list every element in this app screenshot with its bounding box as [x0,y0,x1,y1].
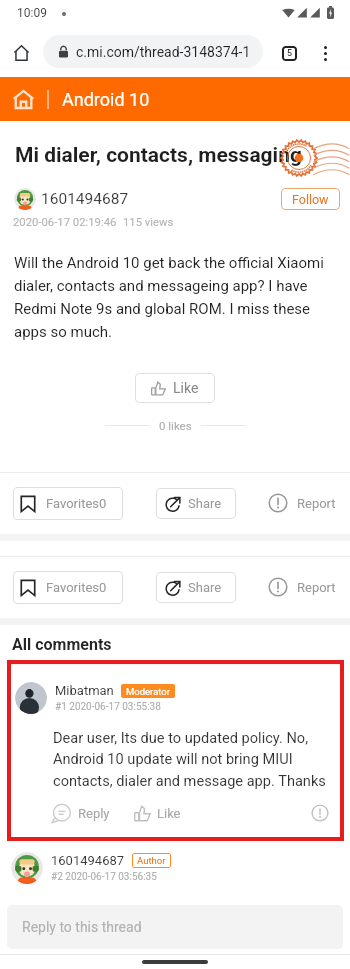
staticText: Will the Android 10 get back the officia… [14,254,332,341]
staticText: Follow [292,192,329,207]
button[interactable]: Home [7,38,36,67]
button[interactable]: Like [134,805,181,822]
staticText: Favorites0 [46,496,107,511]
staticText: Reply to this thread [22,919,142,935]
button[interactable]: Favorites0 [13,487,123,520]
staticText: 1601494687 [51,853,125,868]
staticText: 115 views [123,216,174,229]
staticText: Dear user, Its due to updated policy. No… [53,729,336,790]
button[interactable]: Report [264,488,336,518]
button[interactable]: Reply to this thread [7,905,343,949]
button[interactable]: Favorites0 [13,571,123,604]
button[interactable]: Tabs [275,39,303,67]
button[interactable]: Forum home [8,84,38,114]
staticText: Like [157,806,181,821]
staticText: Share [188,496,222,511]
staticText: Moderator [126,686,170,697]
staticText: 10:09 [17,6,47,20]
staticText: Android 10 [62,89,150,110]
staticText: Report [297,496,336,511]
staticText: 5 [287,48,293,59]
staticText: Report [297,580,336,595]
button[interactable]: c.mi.com/thread-3148374-1 [43,35,263,68]
staticText: 2020-06-17 02:19:46 [13,216,117,229]
button[interactable]: More options [311,39,339,67]
button[interactable]: Reply [51,803,110,824]
staticText: Author [137,855,166,866]
staticText: 1601494687 [41,190,129,208]
staticText: c.mi.com/thread-3148374-1 [76,44,251,60]
staticText: Like [173,380,199,396]
staticText: Share [188,580,222,595]
button[interactable]: Like [135,373,215,403]
button[interactable]: Follow [281,188,340,210]
button[interactable]: Report comment [310,803,330,823]
button[interactable]: Share [156,488,236,519]
staticText: Mibatman [55,683,114,698]
button[interactable]: Share [156,572,236,603]
staticText: Mi dialer, contacts, messaging [15,143,302,168]
staticText: All comments [12,635,112,654]
staticText: #2 2020-06-17 03:56:35 [51,871,157,883]
staticText: Favorites0 [46,580,107,595]
staticText: 0 likes [159,419,192,432]
staticText: Reply [78,806,110,821]
staticText: #1 2020-06-17 03:55:38 [55,701,161,713]
button[interactable]: Report [264,572,336,602]
